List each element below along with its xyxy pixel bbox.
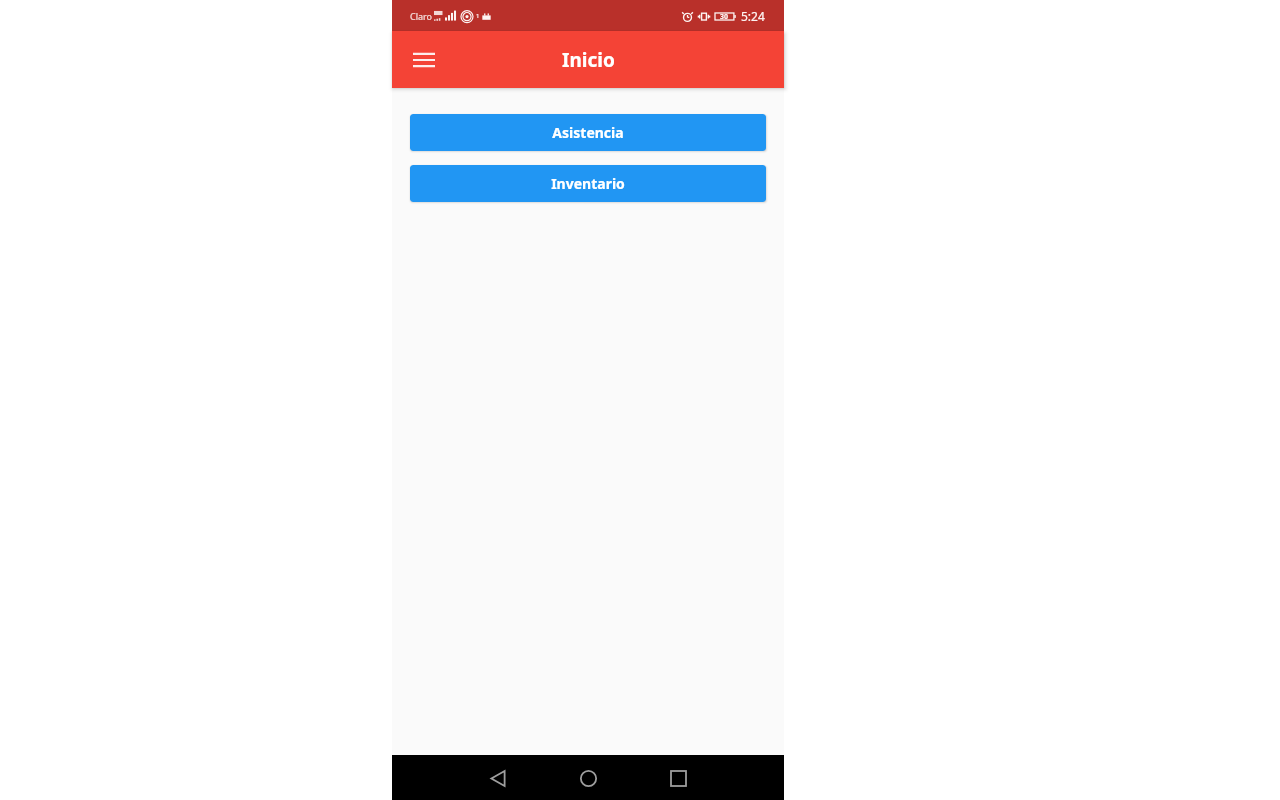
button[interactable]: Asistencia xyxy=(410,114,766,151)
staticText: 5:24 xyxy=(741,8,765,24)
button[interactable]: Home xyxy=(566,756,610,800)
staticText: Inicio xyxy=(562,47,615,73)
staticText: Inventario xyxy=(551,174,625,193)
button[interactable]: Recent apps xyxy=(656,756,700,800)
staticText: Claro xyxy=(410,10,433,22)
staticText: 30 xyxy=(720,12,729,22)
button[interactable]: Open navigation menu xyxy=(402,38,446,82)
staticText: 1 xyxy=(476,12,480,20)
button[interactable]: Back xyxy=(476,756,520,800)
button[interactable]: Inventario xyxy=(410,165,766,202)
staticText: Asistencia xyxy=(552,123,624,142)
